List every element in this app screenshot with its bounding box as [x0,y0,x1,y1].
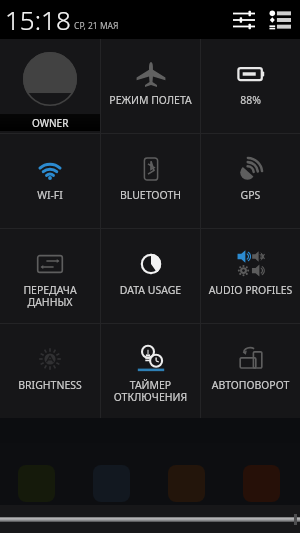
button[interactable]: OWNER [0,39,100,133]
button[interactable]: 88% [201,39,300,133]
staticText: СР, 21 МАЯ [74,20,119,32]
staticText: РЕЖИМ ПОЛЕТА [101,93,200,107]
button[interactable]: ТАЙМЕР ОТКЛЮЧЕНИЯ [101,324,200,418]
staticText: ПЕРЕДАЧА ДАННЫХ [0,283,100,309]
staticText: BRIGHTNESS [0,378,100,392]
button[interactable]: WI-FI [0,134,100,228]
staticText: OWNER [32,116,69,130]
button[interactable]: Notifications [269,11,291,29]
staticText: WI-FI [0,188,100,202]
staticText: АВТОПОВОРОТ [201,378,300,392]
button[interactable]: BLUETOOTH [101,134,200,228]
button[interactable]: GPS [201,134,300,228]
staticText: AUDIO PROFILES [201,283,300,297]
staticText: 15:18 [5,2,71,37]
button[interactable]: РЕЖИМ ПОЛЕТА [101,39,200,133]
staticText: DATA USAGE [101,283,200,297]
staticText: 88% [201,93,300,107]
button[interactable]: АВТОПОВОРОТ [201,324,300,418]
staticText: GPS [201,188,300,202]
staticText: ТАЙМЕР ОТКЛЮЧЕНИЯ [101,378,200,404]
button[interactable]: Quick settings [233,11,255,29]
button[interactable]: BRIGHTNESS [0,324,100,418]
button[interactable]: ПЕРЕДАЧА ДАННЫХ [0,229,100,323]
button[interactable]: AUDIO PROFILES [201,229,300,323]
button[interactable]: DATA USAGE [101,229,200,323]
staticText: BLUETOOTH [101,188,200,202]
